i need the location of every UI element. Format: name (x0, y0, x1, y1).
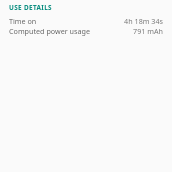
staticText: 791 mAh (133, 26, 163, 36)
staticText: 4h 18m 34s (124, 16, 163, 26)
button[interactable]: Time on (0, 16, 172, 26)
staticText: Computed power usage (9, 26, 133, 36)
staticText: USE DETAILS (9, 3, 52, 12)
staticText: Time on (9, 16, 124, 26)
button[interactable]: Computed power usage (0, 26, 172, 36)
